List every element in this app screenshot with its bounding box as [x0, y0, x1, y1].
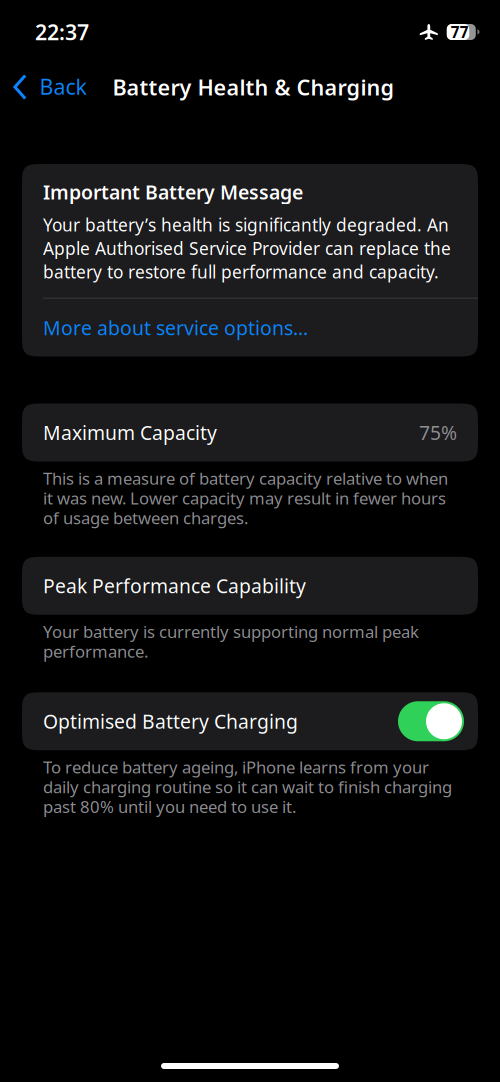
- staticText: Maximum Capacity: [43, 420, 217, 445]
- staticText: This is a measure of battery capacity re…: [43, 468, 448, 528]
- button[interactable]: Optimised Battery Charging: [398, 701, 464, 741]
- staticText: Important Battery Message: [43, 179, 303, 205]
- staticText: Optimised Battery Charging: [43, 708, 298, 734]
- button[interactable]: Peak Performance Capability: [22, 557, 478, 615]
- staticText: To reduce battery ageing, iPhone learns …: [43, 757, 452, 817]
- staticText: More about service options...: [43, 315, 308, 340]
- button[interactable]: Maximum Capacity: [22, 403, 478, 461]
- button[interactable]: More about service options...: [43, 315, 457, 340]
- staticText: Your battery is currently supporting nor…: [43, 622, 419, 661]
- staticText: Your battery’s health is significantly d…: [43, 213, 451, 284]
- staticText: 75%: [419, 420, 457, 445]
- staticText: 22:37: [35, 18, 89, 46]
- staticText: Back: [39, 72, 86, 101]
- staticText: 77: [451, 22, 469, 42]
- button[interactable]: Back: [0, 65, 98, 109]
- staticText: Peak Performance Capability: [43, 573, 306, 599]
- staticText: Battery Health & Charging: [112, 73, 394, 101]
